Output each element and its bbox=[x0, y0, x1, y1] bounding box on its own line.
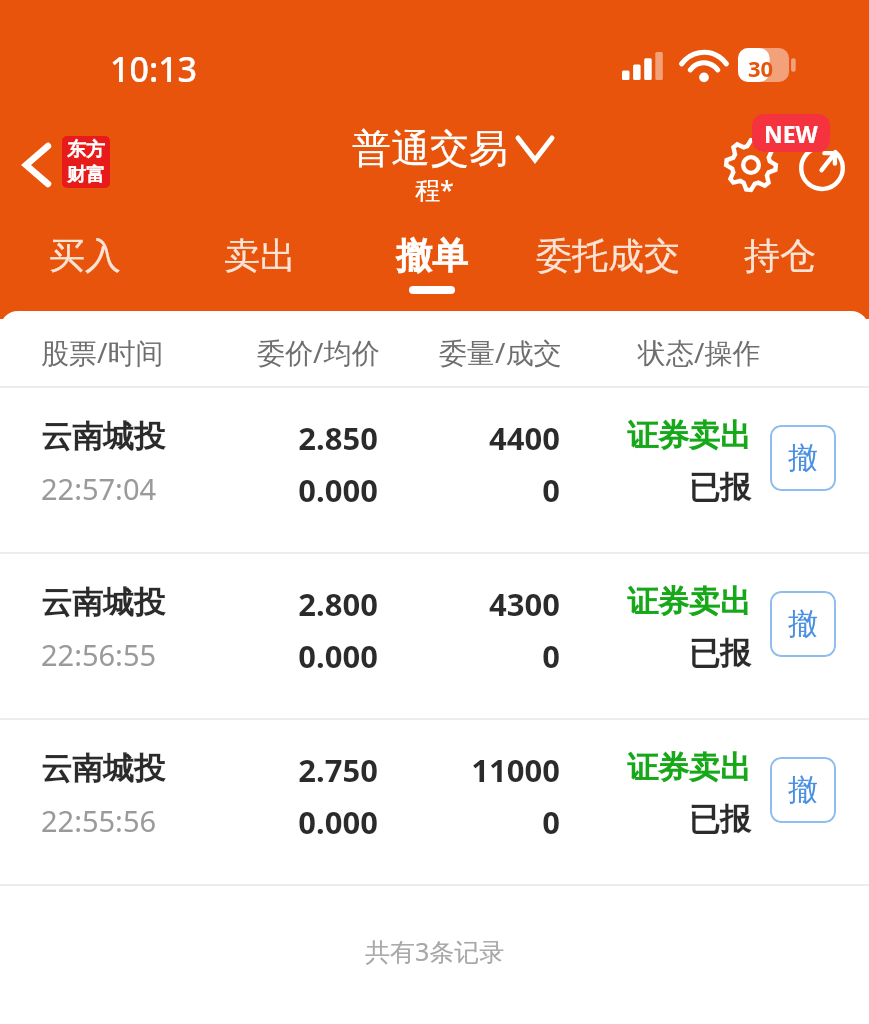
staticText: 22:56:55 bbox=[41, 635, 157, 674]
staticText: 11000 bbox=[400, 749, 560, 791]
staticText: 已报 bbox=[590, 634, 751, 673]
staticText: 2.750 bbox=[228, 749, 378, 791]
staticText: 0 bbox=[400, 635, 560, 677]
staticText: 云南城投 bbox=[41, 749, 165, 788]
button[interactable]: 持仓 bbox=[720, 220, 840, 312]
staticText: 股票/时间 bbox=[41, 333, 164, 371]
staticText: 委托成交 bbox=[536, 233, 680, 278]
button[interactable]: 普通交易 bbox=[352, 124, 552, 173]
button[interactable]: Settings bbox=[718, 132, 784, 198]
button[interactable]: 云南城投 bbox=[0, 720, 869, 884]
staticText: 0.000 bbox=[228, 635, 378, 677]
button[interactable]: 买入 bbox=[25, 220, 145, 312]
staticText: 委量/成交 bbox=[439, 333, 562, 371]
staticText: 普通交易 bbox=[352, 124, 508, 173]
staticText: 已报 bbox=[590, 468, 751, 507]
button[interactable]: 委托成交 bbox=[518, 220, 698, 312]
staticText: 云南城投 bbox=[41, 417, 165, 456]
staticText: 撤单 bbox=[396, 233, 468, 278]
staticText: 云南城投 bbox=[41, 583, 165, 622]
button[interactable]: 撤 bbox=[770, 591, 836, 657]
staticText: 0.000 bbox=[228, 469, 378, 511]
staticText: 0.000 bbox=[228, 801, 378, 843]
staticText: 撤 bbox=[788, 439, 818, 477]
staticText: 卖出 bbox=[224, 233, 296, 278]
staticText: 证券卖出 bbox=[590, 416, 751, 455]
staticText: 程* bbox=[415, 172, 454, 206]
staticText: 持仓 bbox=[744, 233, 816, 278]
staticText: 撤 bbox=[788, 771, 818, 809]
staticText: 4300 bbox=[400, 583, 560, 625]
button[interactable]: 卖出 bbox=[200, 220, 320, 312]
staticText: 状态/操作 bbox=[638, 333, 761, 371]
staticText: 30 bbox=[748, 53, 774, 83]
button[interactable]: 云南城投 bbox=[0, 554, 869, 718]
staticText: 10:13 bbox=[110, 46, 198, 92]
staticText: 22:57:04 bbox=[41, 469, 157, 508]
button[interactable]: 撤 bbox=[770, 425, 836, 491]
staticText: 2.800 bbox=[228, 583, 378, 625]
button[interactable]: 撤 bbox=[770, 757, 836, 823]
staticText: 4400 bbox=[400, 417, 560, 459]
staticText: 撤 bbox=[788, 605, 818, 643]
staticText: 0 bbox=[400, 801, 560, 843]
staticText: 财富 bbox=[67, 163, 105, 187]
staticText: NEW bbox=[764, 118, 818, 149]
staticText: 委价/均价 bbox=[257, 333, 380, 371]
staticText: 东方 bbox=[67, 138, 105, 162]
staticText: 共有3条记录 bbox=[365, 934, 505, 968]
staticText: 22:55:56 bbox=[41, 801, 157, 840]
button[interactable]: 撤单 bbox=[372, 220, 492, 312]
staticText: 证券卖出 bbox=[590, 582, 751, 621]
staticText: 证券卖出 bbox=[590, 748, 751, 787]
button[interactable]: 东方财富 bbox=[62, 136, 110, 188]
button[interactable]: 云南城投 bbox=[0, 388, 869, 552]
staticText: 买入 bbox=[49, 233, 121, 278]
button[interactable]: Exit bbox=[790, 132, 854, 198]
staticText: 已报 bbox=[590, 800, 751, 839]
staticText: 0 bbox=[400, 469, 560, 511]
staticText: 2.850 bbox=[228, 417, 378, 459]
button[interactable]: Back bbox=[6, 132, 68, 198]
